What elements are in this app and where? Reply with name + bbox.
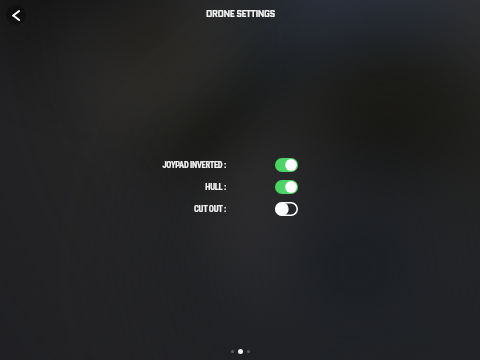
button[interactable]: HULL: [275, 180, 298, 194]
staticText: HULL :: [0, 182, 226, 192]
button[interactable]: Back: [6, 5, 26, 25]
staticText: CUT OUT :: [0, 204, 226, 214]
staticText: DRONE SETTINGS: [206, 7, 275, 20]
staticText: JOYPAD INVERTED :: [0, 160, 226, 170]
button[interactable]: CUT OUT: [275, 202, 298, 216]
button[interactable]: JOYPAD INVERTED: [275, 158, 298, 172]
